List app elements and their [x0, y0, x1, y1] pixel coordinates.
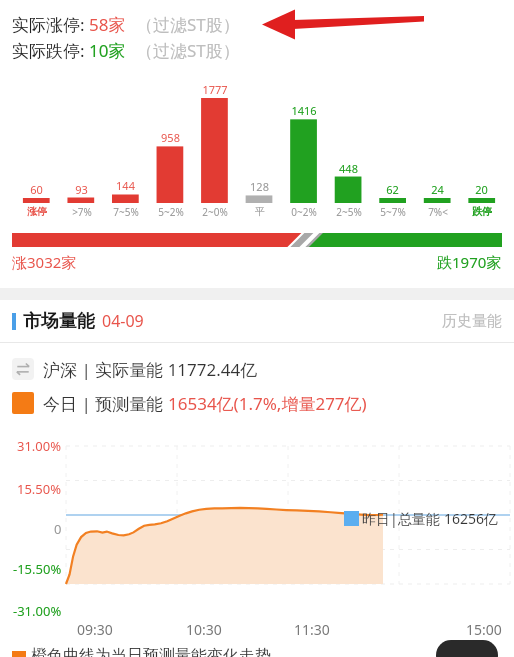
staticText: 58家: [89, 13, 126, 36]
staticText: -15.50%: [13, 560, 62, 578]
button[interactable]: 涨跌分布图: [0, 0, 514, 657]
staticText: 20: [475, 182, 488, 197]
staticText: 实际跌停:: [12, 39, 89, 62]
staticText: 5~7%: [380, 205, 406, 219]
staticText: 62: [386, 182, 399, 197]
staticText: 昨日|总量能: [362, 509, 444, 528]
staticText: 16534亿(1.7%,增量277亿): [168, 392, 367, 415]
staticText: 0~2%: [291, 205, 317, 219]
staticText: 平: [255, 205, 265, 218]
staticText: 市场量能: [23, 310, 95, 333]
staticText: 11:30: [294, 620, 330, 639]
button[interactable]: 今日 | 预测量能: [12, 388, 367, 418]
staticText: 10家: [89, 39, 126, 62]
staticText: （过滤ST股）: [136, 39, 240, 62]
staticText: >7%: [72, 205, 92, 219]
staticText: 7~5%: [113, 205, 139, 219]
staticText: 09:30: [77, 620, 113, 639]
staticText: 涨停: [27, 205, 47, 218]
staticText: -31.00%: [13, 602, 62, 620]
button[interactable]: 涨跌家数比例: [12, 233, 502, 247]
staticText: 128: [250, 179, 269, 194]
staticText: 2~5%: [336, 205, 362, 219]
staticText: 实际涨停:: [12, 13, 89, 36]
staticText: 涨3032家: [12, 252, 77, 272]
staticText: 跌1970家: [437, 252, 502, 272]
staticText: 跌停: [472, 205, 492, 218]
staticText: 60: [30, 182, 43, 197]
staticText: 今日 | 预测量能: [43, 392, 168, 415]
staticText: 2~0%: [202, 205, 228, 219]
staticText: 沪深 | 实际量能 11772.44亿: [43, 358, 258, 381]
staticText: 15:00: [466, 620, 502, 639]
button[interactable]: 市场量能: [0, 300, 514, 342]
staticText: 144: [116, 178, 135, 193]
staticText: 7%<: [428, 205, 448, 219]
button[interactable]: 橙色曲线为当日预测量能变化走势: [12, 646, 271, 657]
button[interactable]: 量能走势图: [0, 438, 514, 620]
staticText: 24: [431, 182, 444, 197]
staticText: 5~2%: [158, 205, 184, 219]
staticText: 1777: [202, 82, 228, 97]
staticText: 历史量能: [442, 312, 502, 331]
button[interactable]: 更多: [436, 640, 498, 657]
staticText: 1416: [291, 103, 317, 118]
staticText: 448: [339, 161, 358, 176]
staticText: （过滤ST股）: [136, 13, 240, 36]
staticText: 橙色曲线为当日预测量能变化走势: [31, 646, 271, 657]
staticText: 958: [161, 130, 180, 145]
staticText: 15.50%: [17, 480, 62, 498]
staticText: 04-09: [102, 310, 144, 332]
staticText: 31.00%: [17, 437, 62, 455]
staticText: 10:30: [186, 620, 222, 639]
staticText: 0: [54, 520, 62, 538]
staticText: 16256亿: [444, 509, 499, 528]
button[interactable]: 沪深 | 实际量能 11772.44亿: [12, 354, 258, 384]
staticText: 93: [75, 182, 88, 197]
